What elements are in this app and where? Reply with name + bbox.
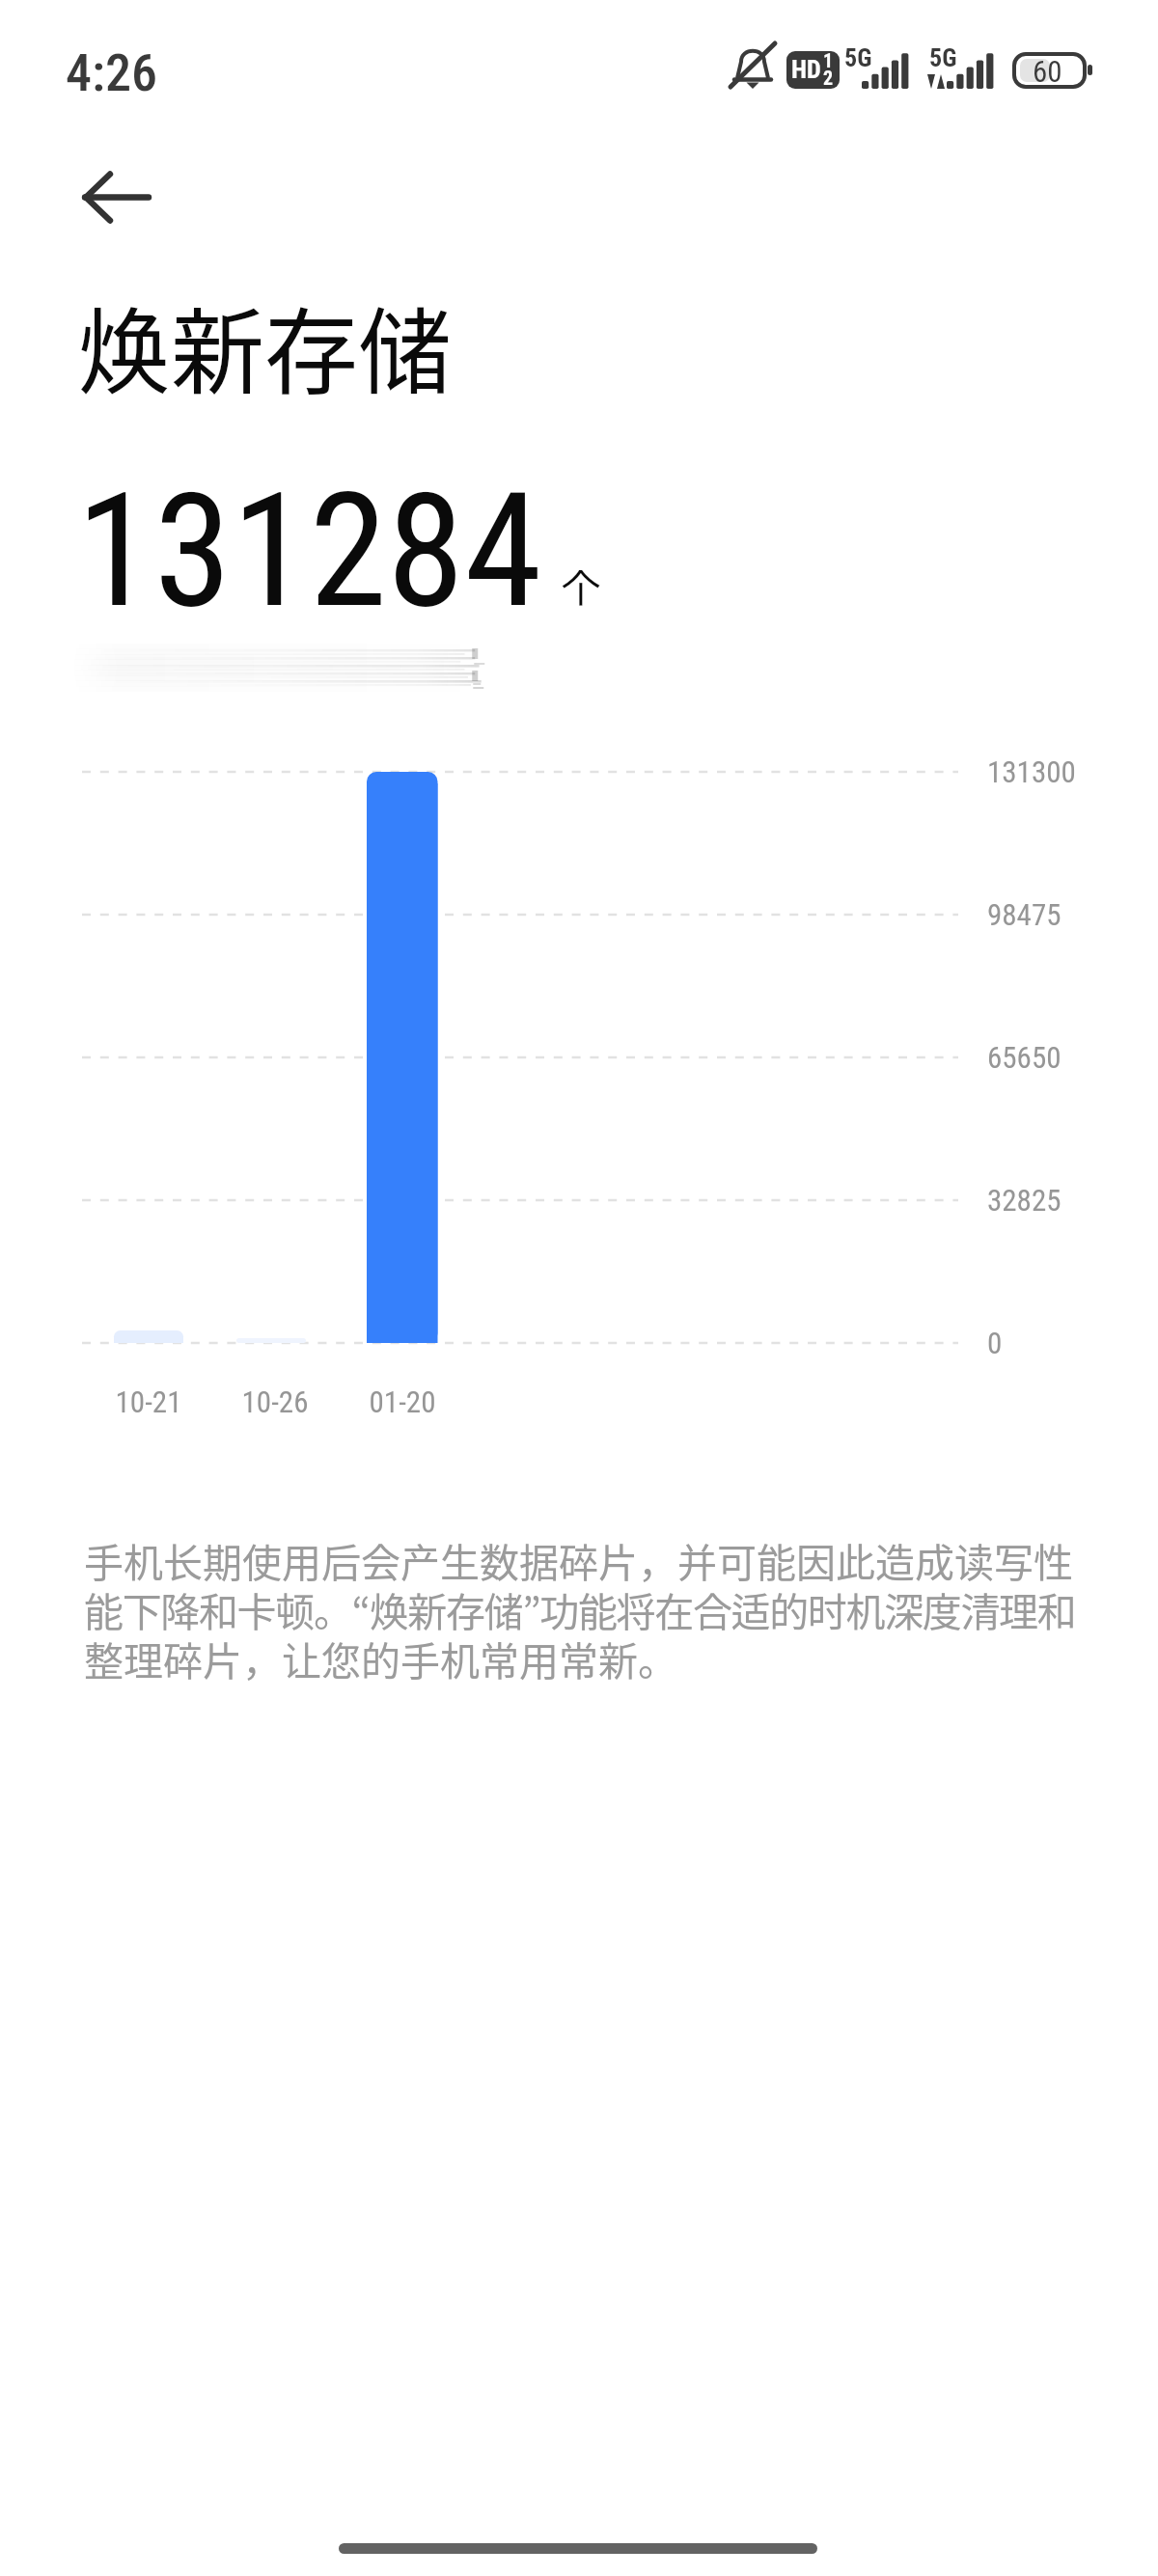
staticText: 个 (562, 558, 600, 614)
staticText: 10-26 (159, 1384, 391, 1419)
staticText: 手机长期使用后会产生数据碎片，并可能因此造成读写性 (84, 1531, 1073, 1588)
staticText: 5G (844, 43, 872, 72)
staticText: HD (791, 55, 821, 84)
staticText: 98475 (987, 897, 1061, 932)
staticText: 4:26 (66, 42, 158, 103)
staticText: 0 (987, 1326, 1003, 1360)
staticText: 5G (929, 43, 957, 72)
staticText: 2 (823, 67, 834, 89)
button[interactable]: Home (339, 2543, 817, 2554)
button[interactable]: Back (44, 145, 170, 251)
staticText: 能下降和卡顿。“焕新存储”功能将在合适的时机深度清理和 (84, 1580, 1076, 1637)
staticText: 32825 (987, 1183, 1061, 1218)
staticText: 1 (823, 49, 834, 71)
staticText: 131284 (76, 459, 542, 644)
staticText: 01-20 (287, 1384, 518, 1419)
staticText: 65650 (987, 1040, 1061, 1075)
staticText: 10-21 (33, 1384, 264, 1419)
staticText: 整理碎片，让您的手机常用常新。 (84, 1630, 677, 1686)
staticText: 60 (1033, 54, 1062, 89)
staticText: 131300 (987, 754, 1076, 789)
staticText: 焕新存储 (77, 277, 452, 412)
